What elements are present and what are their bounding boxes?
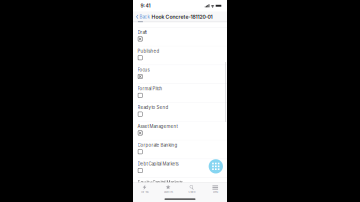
button[interactable]: Published [133,46,227,65]
staticText: Menu [213,190,218,193]
button[interactable]: Menu [203,183,227,195]
staticText: Published [138,48,160,54]
staticText: Hook Concrete-181120-01 [151,14,212,20]
button[interactable]: Ready to Send [133,103,227,122]
button[interactable]: Formal Pitch [133,84,227,103]
staticText: Focus [138,67,150,72]
button[interactable]: Back [133,11,149,22]
staticText: Debt Capital Markets [138,161,179,166]
button[interactable]: Debt Capital Markets [133,159,227,178]
button[interactable]: Equity Capital Markets [133,178,227,197]
staticText: Corporate Banking [138,142,178,148]
staticText: Ready to Send [138,105,169,110]
button[interactable]: Focus [133,65,227,84]
button[interactable]: Corporate Banking [133,140,227,159]
staticText: Favorites [164,190,173,193]
staticText: Draft [138,30,147,35]
button[interactable]: Favorites [156,183,180,195]
button[interactable]: Search [180,183,203,195]
staticText: Search [188,190,195,193]
button[interactable]: Draft [133,28,227,46]
staticText: Asset Management [138,124,178,129]
staticText: 9:41 [140,3,150,9]
staticText: Back [139,14,149,19]
staticText: For You [141,190,148,193]
staticText: Equity Capital Markets [138,180,183,185]
button[interactable]: For You [133,183,156,195]
staticText: Formal Pitch [138,86,163,91]
button[interactable]: AssistiveTouch [209,159,223,173]
button[interactable]: Asset Management [133,122,227,140]
